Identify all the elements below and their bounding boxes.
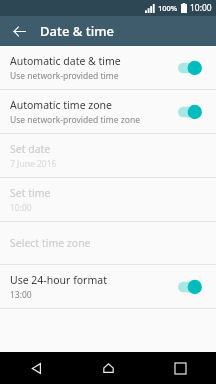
button[interactable]: Back [6, 18, 32, 44]
staticText: 10:00 [190, 2, 212, 14]
staticText: Use 24-hour format [10, 273, 107, 287]
button[interactable]: Toggle [178, 277, 208, 297]
staticText: Date & time [40, 22, 114, 40]
button[interactable]: Home [72, 352, 144, 384]
staticText: Select time zone [10, 236, 91, 250]
button[interactable]: Use 24-hour format [0, 265, 216, 308]
button[interactable]: Select time zone [0, 222, 216, 264]
button[interactable]: Set time [0, 178, 216, 221]
staticText: Use network-provided time zone [10, 114, 140, 126]
button[interactable]: Recent apps [144, 352, 216, 384]
staticText: Set date [10, 142, 51, 156]
button[interactable]: Toggle [178, 58, 208, 78]
staticText: 13:00 [10, 289, 32, 301]
button[interactable]: Back [0, 352, 72, 384]
button[interactable]: Toggle [178, 102, 208, 122]
staticText: Automatic time zone [10, 98, 112, 112]
button[interactable]: Automatic date & time [0, 46, 216, 89]
staticText: 10:00 [10, 202, 32, 214]
staticText: 7 June 2016 [10, 158, 57, 170]
staticText: Use network-provided time [10, 70, 119, 82]
staticText: Automatic date & time [10, 54, 121, 68]
button[interactable]: Automatic time zone [0, 90, 216, 133]
staticText: 100% [158, 3, 178, 13]
button[interactable]: Set date [0, 134, 216, 177]
staticText: Set time [10, 186, 51, 200]
